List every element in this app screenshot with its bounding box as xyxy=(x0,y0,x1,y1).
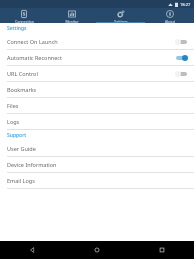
button[interactable]: Bookmarks xyxy=(0,82,194,97)
staticText: Automatic Reconnect xyxy=(7,54,175,61)
staticText: Bookmarks xyxy=(7,86,37,93)
staticText: Email Logs xyxy=(7,177,35,184)
button[interactable]: Monitor xyxy=(48,8,96,23)
button[interactable]: Automatic Reconnect xyxy=(0,50,194,65)
other: On xyxy=(175,54,188,62)
staticText: About xyxy=(165,19,175,23)
button[interactable]: Device Information xyxy=(0,157,194,172)
button[interactable]: User Guide xyxy=(0,141,194,156)
button[interactable]: Connect On Launch xyxy=(0,34,194,49)
button[interactable]: Recents xyxy=(129,241,194,259)
staticText: URL Control xyxy=(7,70,175,77)
staticText: Device Information xyxy=(7,161,57,168)
other: Off xyxy=(175,38,188,46)
staticText: User Guide xyxy=(7,145,36,152)
staticText: Settings xyxy=(7,25,27,32)
button[interactable]: Email Logs xyxy=(0,173,194,188)
staticText: Settings xyxy=(114,19,128,23)
staticText: Monitor xyxy=(65,19,79,23)
staticText: Logs xyxy=(7,118,20,125)
button[interactable]: URL Control xyxy=(0,66,194,81)
button[interactable]: Back xyxy=(0,241,64,259)
staticText: Files xyxy=(7,102,19,109)
button[interactable]: Logs xyxy=(0,114,194,129)
staticText: 18:27 xyxy=(180,2,191,7)
staticText: Connection xyxy=(15,19,34,23)
button[interactable]: Files xyxy=(0,98,194,113)
staticText: Connect On Launch xyxy=(7,38,175,45)
button[interactable]: Home xyxy=(64,241,129,259)
other: Off xyxy=(175,70,188,78)
button[interactable]: Connection xyxy=(0,8,48,23)
button[interactable]: Settings xyxy=(96,8,145,23)
staticText: Support xyxy=(7,132,27,139)
button[interactable]: About xyxy=(145,8,194,23)
